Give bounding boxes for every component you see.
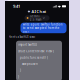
button[interactable]: AI Chat — [27, 9, 46, 14]
staticText: 9:41 — [13, 4, 20, 9]
staticText: import SwiftUI — [18, 43, 37, 46]
staticText: } — [18, 69, 21, 72]
staticText: write a pure swiftui function to send ac… — [23, 23, 63, 33]
button[interactable]: Gemini 2.5 Flash — [24, 15, 49, 21]
staticText: Here's a SwiftUI view: — [8, 35, 35, 39]
staticText: Gemini 2.5 Flash — [30, 14, 42, 22]
staticText: AI Chat — [31, 9, 46, 14]
staticText: } — [18, 75, 19, 79]
staticText: struct ContentView: View { — [18, 49, 54, 53]
staticText: public func send() { — [18, 56, 48, 59]
staticText: accept(user) — [18, 62, 38, 66]
